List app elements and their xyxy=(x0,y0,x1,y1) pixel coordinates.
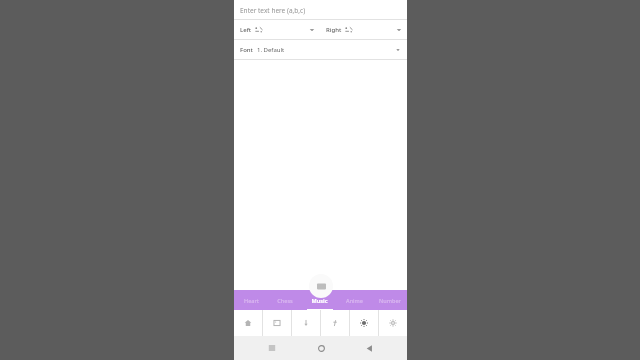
button[interactable]: Recents xyxy=(262,338,282,358)
button[interactable]: Home xyxy=(311,338,331,358)
staticText: Anime xyxy=(346,297,363,304)
staticText: Font xyxy=(240,46,253,54)
button[interactable]: Keyboard xyxy=(309,274,333,298)
staticText: 1. Default xyxy=(257,46,285,54)
button[interactable]: Gallery xyxy=(263,310,291,336)
button[interactable]: Right xyxy=(320,20,407,39)
staticText: Left xyxy=(240,26,252,34)
button[interactable]: Music xyxy=(302,290,337,310)
button[interactable]: Number xyxy=(372,290,407,310)
staticText: Right xyxy=(326,26,342,34)
staticText: Music xyxy=(311,297,328,304)
button[interactable]: Enter text here (a,b,c) xyxy=(234,0,407,20)
staticText: Number xyxy=(379,297,401,304)
staticText: Enter text here (a,b,c) xyxy=(240,6,306,15)
button[interactable]: Anime xyxy=(337,290,372,310)
button[interactable]: Text xyxy=(321,310,349,336)
button[interactable]: Download xyxy=(292,310,320,336)
button[interactable]: Chess xyxy=(268,290,302,310)
button[interactable]: Left xyxy=(234,20,320,39)
button[interactable]: Home xyxy=(234,310,262,336)
staticText: Heart xyxy=(244,297,259,304)
button[interactable]: Heart xyxy=(234,290,268,310)
staticText: Chess xyxy=(277,297,293,304)
button[interactable]: Settings xyxy=(379,310,407,336)
button[interactable]: Back xyxy=(359,338,379,358)
button[interactable]: Brightness xyxy=(350,310,378,336)
button[interactable]: Font xyxy=(234,40,407,59)
